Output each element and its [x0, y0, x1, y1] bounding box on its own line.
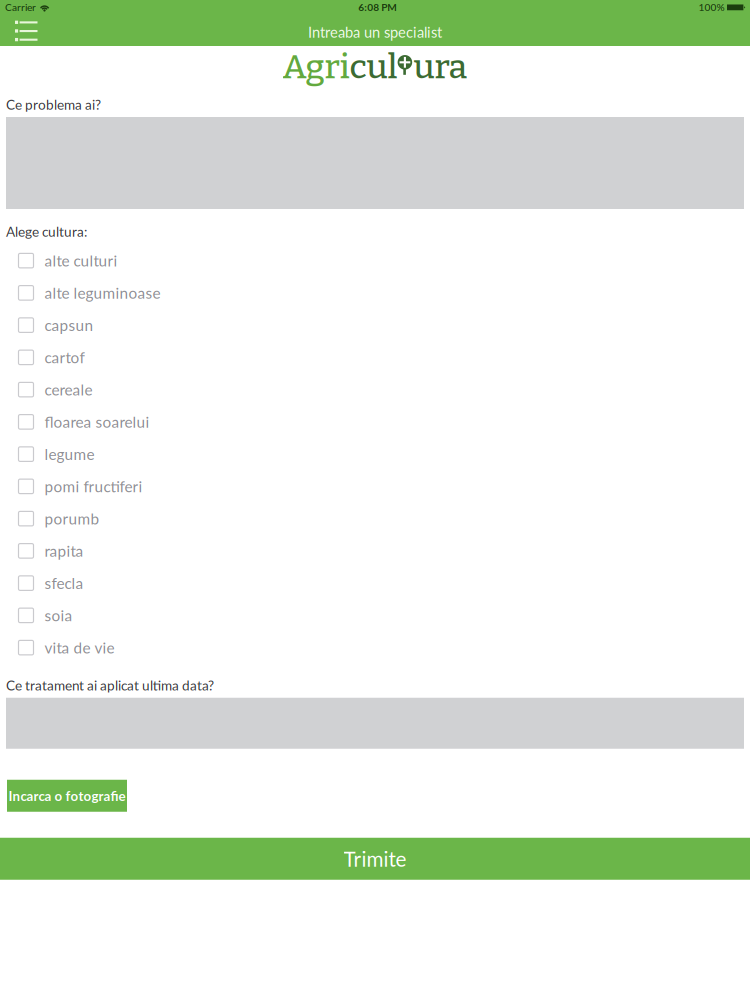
button[interactable]: cereale	[0, 373, 750, 406]
staticText: Ce problema ai?	[6, 96, 101, 113]
button[interactable]: Trimite	[0, 838, 750, 880]
staticText: soia	[44, 606, 72, 625]
staticText: Carrier	[5, 1, 36, 13]
button[interactable]: capsun	[0, 309, 750, 341]
button[interactable]: alte culturi	[0, 244, 750, 277]
button[interactable]: alte leguminoase	[0, 277, 750, 309]
staticText: floarea soarelui	[44, 413, 149, 431]
staticText: ura	[413, 47, 467, 87]
button[interactable]: Text field	[0, 698, 750, 749]
staticText: Agri	[282, 47, 349, 87]
staticText: alte culturi	[44, 251, 117, 270]
button[interactable]: Incarca o fotografie	[7, 780, 127, 812]
button[interactable]: Menu	[0, 17, 53, 45]
staticText: 6:08 PM	[358, 1, 397, 13]
staticText: cul	[349, 47, 397, 87]
staticText: cereale	[44, 380, 92, 399]
staticText: alte leguminoase	[44, 284, 160, 302]
staticText: rapita	[44, 542, 83, 560]
button[interactable]: sfecla	[0, 567, 750, 599]
staticText: sfecla	[44, 574, 83, 592]
staticText: Incarca o fotografie	[8, 788, 125, 804]
button[interactable]: legume	[0, 438, 750, 470]
staticText: porumb	[44, 509, 99, 528]
staticText: pomi fructiferi	[44, 477, 142, 496]
staticText: vita de vie	[44, 638, 114, 657]
button[interactable]: rapita	[0, 535, 750, 567]
button[interactable]: Text field	[0, 117, 750, 209]
staticText: capsun	[44, 316, 93, 334]
button[interactable]: porumb	[0, 502, 750, 535]
staticText: Trimite	[343, 846, 406, 871]
button[interactable]: pomi fructiferi	[0, 470, 750, 502]
button[interactable]: soia	[0, 599, 750, 631]
button[interactable]: vita de vie	[0, 631, 750, 664]
button[interactable]: cartof	[0, 341, 750, 373]
staticText: 100%	[698, 1, 724, 13]
staticText: Alege cultura:	[6, 223, 87, 240]
staticText: legume	[44, 445, 94, 463]
staticText: Intreaba un specialist	[308, 23, 442, 41]
button[interactable]: floarea soarelui	[0, 406, 750, 438]
staticText: cartof	[44, 348, 84, 367]
staticText: Ce tratament ai aplicat ultima data?	[6, 677, 214, 693]
